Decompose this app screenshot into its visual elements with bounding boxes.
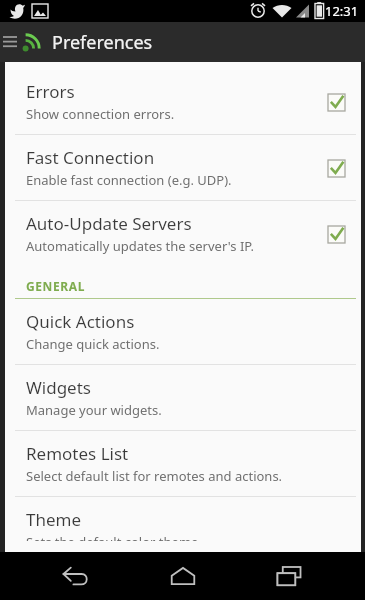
staticText: Sets the default color theme. <box>26 533 202 541</box>
staticText: Preferences <box>52 30 153 55</box>
staticText: Remotes List <box>26 442 129 465</box>
button[interactable]: Toggle setting, checked <box>325 157 347 179</box>
button[interactable]: Quick Actions <box>5 299 361 364</box>
button[interactable]: Remotes List <box>5 431 361 496</box>
button[interactable]: Auto-Update Servers <box>5 201 361 266</box>
button[interactable]: Theme <box>5 497 361 552</box>
staticText: Theme <box>26 508 82 531</box>
staticText: Widgets <box>26 376 91 399</box>
staticText: Quick Actions <box>26 310 135 333</box>
button[interactable]: Recent apps <box>259 554 319 598</box>
staticText: Auto-Update Servers <box>26 212 192 235</box>
staticText: 12:31 <box>325 2 359 20</box>
button[interactable]: Errors <box>5 69 361 134</box>
staticText: Select default list for remotes and acti… <box>26 467 283 485</box>
button[interactable]: Open navigation drawer <box>0 22 20 62</box>
button[interactable]: Widgets <box>5 365 361 430</box>
button[interactable]: Home <box>153 554 213 598</box>
button[interactable]: Fast Connection <box>5 135 361 200</box>
button[interactable]: Toggle setting, checked <box>325 223 347 245</box>
staticText: GENERAL <box>26 278 85 294</box>
button[interactable]: App logo, up <box>20 30 44 54</box>
staticText: Enable fast connection (e.g. UDP). <box>26 171 232 189</box>
staticText: Errors <box>26 80 75 103</box>
button[interactable]: Toggle setting, checked <box>325 91 347 113</box>
staticText: Change quick actions. <box>26 335 160 353</box>
button[interactable]: Back <box>46 554 106 598</box>
staticText: Show connection errors. <box>26 105 175 123</box>
staticText: Manage your widgets. <box>26 401 162 419</box>
staticText: Automatically updates the server's IP. <box>26 237 254 255</box>
staticText: Fast Connection <box>26 146 155 169</box>
